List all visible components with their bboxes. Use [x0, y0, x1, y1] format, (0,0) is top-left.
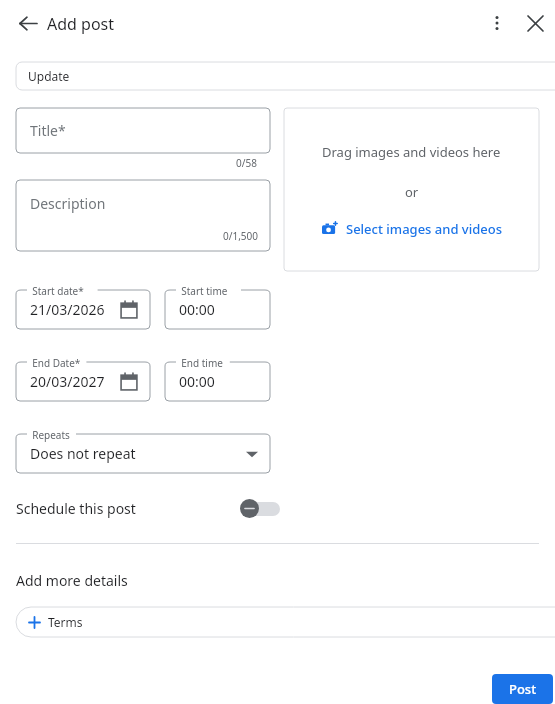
button[interactable]: Back [8, 3, 48, 43]
staticText: 20/03/2027 [30, 372, 105, 391]
staticText: 00:00 [179, 300, 215, 319]
staticText: Schedule this post [16, 499, 136, 518]
button[interactable]: Start date* [16, 282, 150, 329]
staticText: Start date* [27, 284, 89, 298]
staticText: 00:00 [179, 372, 215, 391]
button[interactable]: Repeats [16, 426, 270, 473]
button[interactable]: More options [479, 5, 515, 41]
staticText: Terms [48, 614, 83, 630]
other: Pick date [120, 301, 138, 319]
staticText: 0/1,500 [223, 229, 258, 243]
staticText: Drag images and videos here [322, 143, 501, 161]
staticText: Does not repeat [30, 444, 136, 463]
button[interactable]: Update [16, 62, 555, 90]
button[interactable]: Title* [16, 108, 270, 153]
other: Pick date [120, 373, 138, 391]
staticText: Add post [47, 13, 115, 35]
button[interactable]: Terms [16, 607, 555, 637]
button[interactable]: End Date* [16, 354, 150, 401]
staticText: Select images and videos [346, 220, 502, 238]
staticText: Title* [30, 121, 66, 140]
staticText: 0/58 [236, 156, 257, 170]
button[interactable]: Start time [165, 282, 270, 329]
button[interactable]: End time [165, 354, 270, 401]
staticText: 21/03/2026 [30, 300, 105, 319]
staticText: or [405, 183, 419, 201]
other: Schedule this post toggle [240, 499, 274, 518]
staticText: Update [28, 68, 70, 84]
button[interactable]: Schedule this post [16, 494, 274, 522]
button[interactable]: Post [492, 674, 553, 704]
staticText: Add more details [16, 571, 128, 590]
staticText: End Date* [27, 356, 86, 370]
staticText: End time [176, 356, 229, 370]
staticText: Start time [176, 284, 233, 298]
staticText: Repeats [27, 428, 76, 442]
button[interactable]: Close [517, 5, 553, 41]
button[interactable]: Description [16, 180, 270, 251]
staticText: Post [509, 680, 537, 698]
other: Expand [246, 448, 258, 460]
staticText: Description [30, 194, 106, 213]
button[interactable]: Select images and videos [322, 220, 502, 238]
